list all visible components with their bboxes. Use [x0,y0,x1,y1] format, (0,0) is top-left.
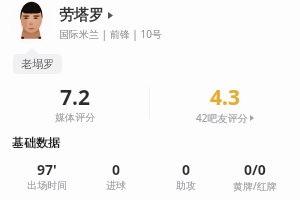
button[interactable]: 劳塔罗 [59,6,113,25]
staticText: 助攻 [176,179,196,192]
staticText: 基础数据 [12,135,60,150]
staticText: 42吧友评分 [196,111,248,125]
staticText: 出场时间 [27,179,67,192]
staticText: 0 [112,160,121,179]
staticText: 国际米兰 | 前锋 | 10号 [59,27,162,41]
staticText: 劳塔罗 [59,6,104,25]
staticText: 进球 [106,179,126,192]
button[interactable]: 0 [82,160,150,192]
staticText: 媒体评分 [0,111,150,124]
button[interactable]: 0/0 [221,160,289,193]
staticText: 0/0 [244,160,266,179]
staticText: 7.2 [0,83,150,112]
button[interactable]: 42吧友评分 [196,111,254,125]
button[interactable]: Player photo [9,0,53,44]
button[interactable]: 97' [13,160,81,192]
button[interactable]: 0 [152,160,220,192]
staticText: 0 [182,160,191,179]
staticText: 4.3 [150,83,300,112]
button[interactable]: 老塌罗 [13,54,62,74]
staticText: 97' [37,160,57,179]
staticText: 黄牌/红牌 [233,179,277,193]
staticText: 老塌罗 [21,57,54,71]
